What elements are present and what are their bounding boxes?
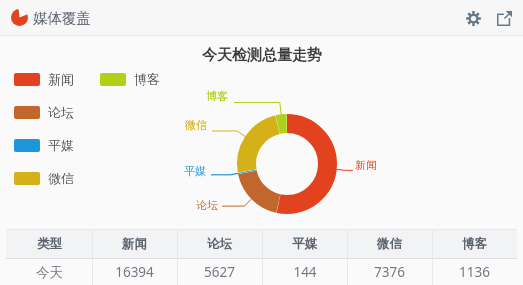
staticText: 微信	[377, 236, 402, 252]
staticText: 新闻	[122, 236, 147, 252]
staticText: 论坛	[207, 236, 232, 252]
staticText: 1136	[459, 263, 490, 281]
staticText: 类型	[37, 236, 62, 252]
staticText: 微信	[185, 118, 207, 132]
staticText: 今天	[36, 264, 63, 281]
button[interactable]: Open in new window	[491, 5, 517, 31]
button[interactable]: 微信	[347, 230, 432, 258]
staticText: 今天检测总量走势	[202, 46, 322, 65]
staticText: 媒体覆盖	[33, 9, 91, 27]
staticText: 博客	[462, 236, 487, 252]
button[interactable]: 新闻	[92, 230, 177, 258]
staticText: 博客	[134, 71, 160, 87]
staticText: 论坛	[196, 198, 218, 212]
staticText: 平媒	[292, 236, 317, 252]
button[interactable]: 类型	[6, 230, 92, 258]
staticText: 微信	[48, 170, 74, 186]
button[interactable]: 16394	[92, 259, 177, 285]
button[interactable]: 博客	[432, 230, 517, 258]
staticText: 博客	[206, 89, 228, 103]
staticText: 平媒	[184, 164, 206, 178]
staticText: 论坛	[48, 104, 74, 120]
button[interactable]: 1136	[432, 259, 517, 285]
staticText: 新闻	[48, 71, 74, 87]
button[interactable]: Settings	[460, 5, 486, 31]
staticText: 平媒	[48, 137, 74, 153]
button[interactable]: 平媒	[262, 230, 347, 258]
button[interactable]: 平媒	[14, 136, 74, 154]
staticText: 144	[293, 263, 317, 281]
button[interactable]: 博客	[100, 70, 160, 88]
button[interactable]: 今天	[6, 259, 92, 285]
staticText: 5627	[204, 263, 235, 281]
button[interactable]: 论坛	[177, 230, 262, 258]
button[interactable]: 7376	[347, 259, 432, 285]
button[interactable]: 微信	[14, 169, 74, 187]
button[interactable]: 论坛	[14, 103, 74, 121]
staticText: 7376	[374, 263, 405, 281]
button[interactable]: 5627	[177, 259, 262, 285]
button[interactable]: 新闻	[14, 70, 74, 88]
staticText: 新闻	[355, 158, 377, 172]
button[interactable]: 144	[262, 259, 347, 285]
staticText: 16394	[115, 263, 154, 281]
